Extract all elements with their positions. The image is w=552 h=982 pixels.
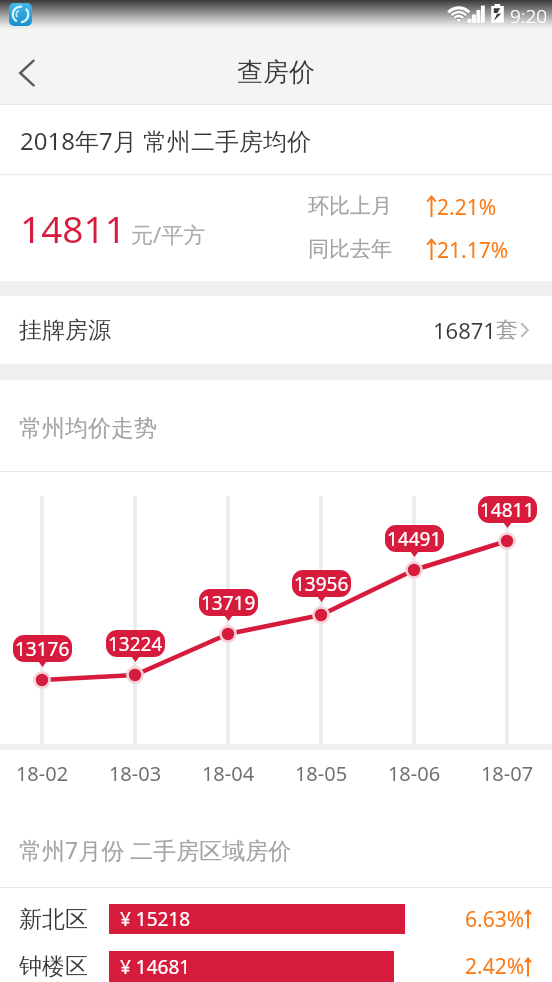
staticText: 18-06: [369, 760, 459, 787]
staticText: 16871: [433, 315, 496, 345]
staticText: 18-07: [462, 760, 552, 787]
staticText: 2.42%: [465, 952, 525, 981]
staticText: 18-03: [90, 760, 180, 787]
staticText: 14811: [480, 497, 535, 523]
staticText: 查房价: [237, 56, 315, 89]
staticText: 2018年7月 常州二手房均价: [20, 124, 311, 157]
staticText: 18-04: [183, 760, 273, 787]
staticText: 18-05: [276, 760, 366, 787]
button[interactable]: Back: [0, 37, 58, 99]
staticText: 元/平方: [131, 219, 206, 249]
staticText: 环比上月: [308, 193, 392, 219]
staticText: 13224: [108, 631, 163, 657]
staticText: 21.17%: [437, 236, 509, 265]
staticText: 13719: [201, 590, 256, 616]
staticText: 挂牌房源: [19, 316, 111, 345]
staticText: 13176: [15, 636, 70, 662]
staticText: 14491: [387, 526, 442, 552]
staticText: 14811: [20, 203, 126, 253]
button[interactable]: 挂牌房源: [0, 296, 552, 364]
staticText: ¥ 15218: [120, 906, 191, 932]
staticText: 2.21%: [437, 193, 497, 222]
button[interactable]: 新北区: [0, 904, 552, 934]
staticText: 常州7月份 二手房区域房价: [19, 834, 292, 865]
staticText: 13956: [294, 571, 349, 597]
button[interactable]: 钟楼区: [0, 951, 552, 982]
staticText: 新北区: [19, 905, 88, 934]
staticText: 6.63%: [465, 905, 525, 934]
staticText: 9:20: [510, 3, 548, 29]
staticText: 钟楼区: [19, 952, 88, 981]
staticText: 同比去年: [308, 236, 392, 262]
staticText: 18-02: [0, 760, 87, 787]
staticText: ¥ 14681: [120, 954, 191, 980]
staticText: 常州均价走势: [19, 414, 157, 443]
staticText: 套: [496, 316, 518, 344]
